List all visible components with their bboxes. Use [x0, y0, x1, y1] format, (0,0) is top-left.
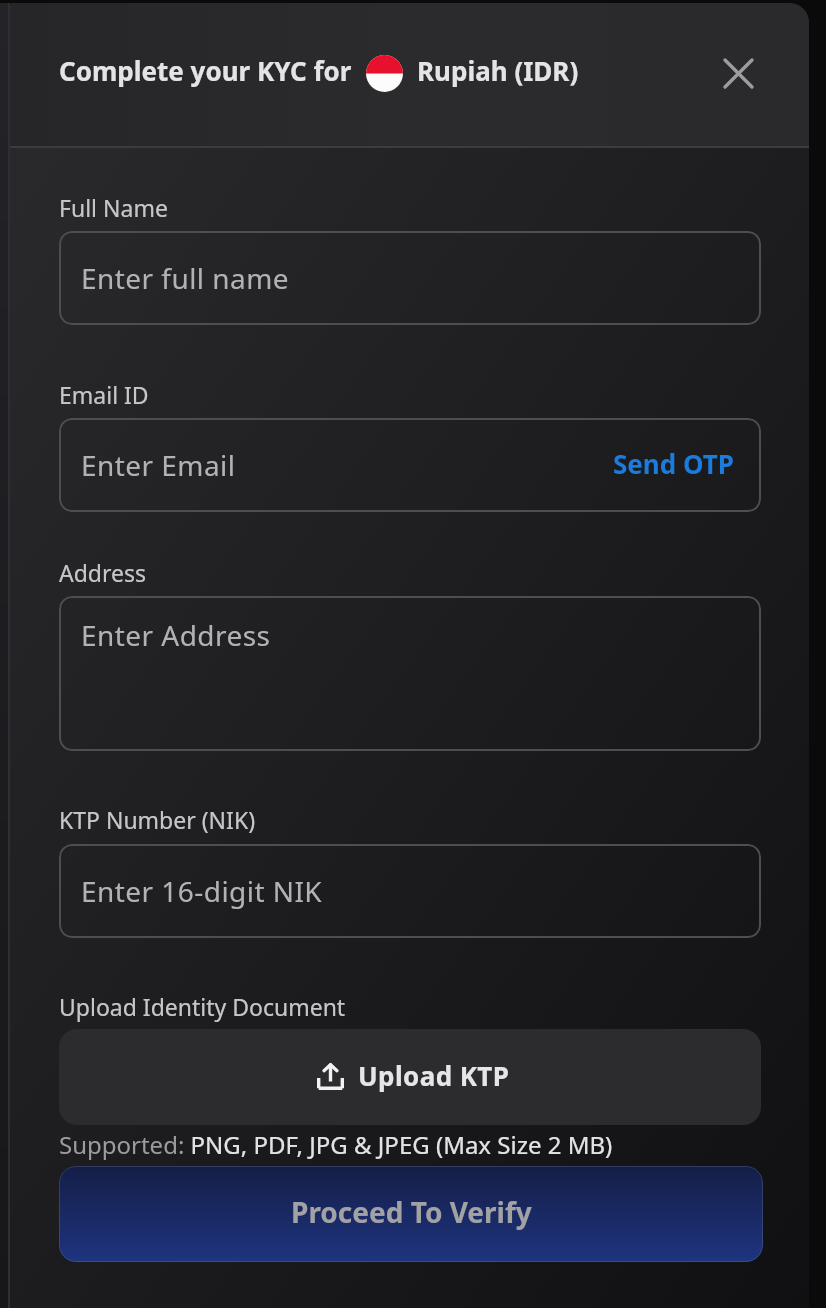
- staticText: Proceed To Verify: [291, 1193, 532, 1231]
- staticText: Upload Identity Document: [59, 991, 346, 1022]
- staticText: Enter Email: [81, 446, 236, 484]
- staticText: Email ID: [59, 379, 149, 410]
- button[interactable]: [59, 231, 761, 325]
- staticText: Address: [59, 557, 147, 588]
- staticText: Rupiah (IDR): [417, 53, 579, 88]
- staticText: Send OTP: [613, 446, 734, 481]
- button[interactable]: [59, 844, 761, 938]
- staticText: Upload KTP: [358, 1058, 510, 1093]
- staticText: Complete your KYC for: [59, 53, 352, 88]
- button[interactable]: Close: [716, 51, 761, 96]
- staticText: Enter full name: [81, 259, 290, 297]
- button[interactable]: Send OTP: [609, 441, 738, 486]
- button[interactable]: Proceed To Verify: [59, 1166, 763, 1262]
- button[interactable]: [59, 418, 761, 512]
- button[interactable]: [59, 596, 761, 751]
- button[interactable]: Upload KTP: [59, 1029, 761, 1125]
- staticText: Full Name: [59, 192, 168, 223]
- staticText: Supported: PNG, PDF, JPG & JPEG (Max Siz…: [59, 1128, 613, 1161]
- staticText: KTP Number (NIK): [59, 804, 256, 835]
- staticText: Enter Address: [81, 616, 271, 654]
- staticText: Enter 16-digit NIK: [81, 872, 323, 910]
